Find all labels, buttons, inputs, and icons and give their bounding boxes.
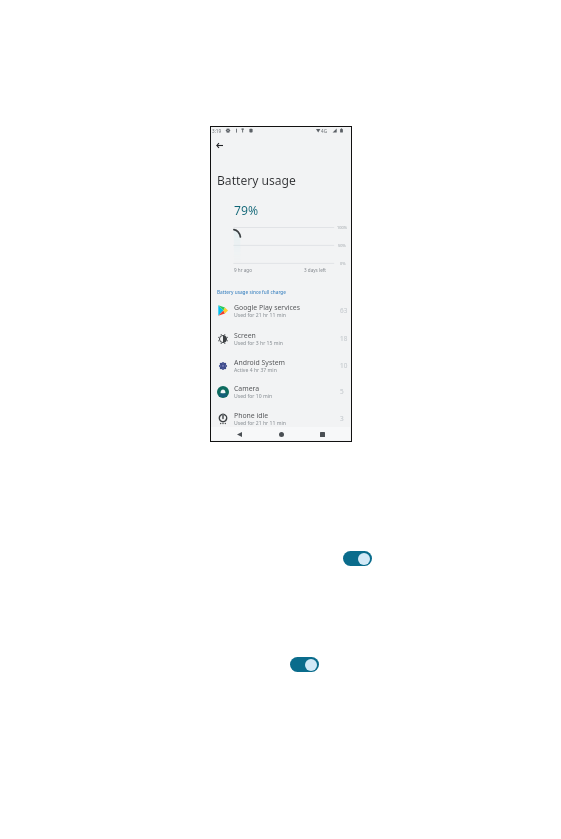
staticText: 3 days left: [304, 267, 326, 273]
button[interactable]: Camera: [211, 378, 350, 405]
staticText: Screen: [234, 331, 256, 340]
staticText: Google Play services: [234, 303, 300, 312]
staticText: 18: [340, 334, 348, 343]
button[interactable]: Toggle switch, on: [290, 657, 319, 672]
button[interactable]: Back: [233, 428, 245, 440]
staticText: Camera: [234, 384, 260, 393]
staticText: Used for 21 hr 11 min: [234, 312, 286, 319]
staticText: 3: [340, 414, 344, 423]
staticText: 79%: [234, 202, 259, 219]
staticText: 3:19: [212, 128, 222, 134]
staticText: Active 4 hr 37 min: [234, 367, 277, 374]
staticText: Used for 10 min: [234, 393, 273, 400]
staticText: Battery usage since full charge: [217, 289, 286, 295]
staticText: 4G: [321, 128, 327, 134]
button[interactable]: Phone idle: [211, 405, 350, 432]
button[interactable]: Home: [275, 428, 287, 440]
staticText: 10: [340, 361, 348, 370]
staticText: Phone idle: [234, 411, 269, 420]
staticText: 9 hr ago: [234, 267, 252, 273]
staticText: Used for 3 hr 15 min: [234, 340, 283, 347]
button[interactable]: Google Play services: [211, 297, 350, 324]
staticText: 0%: [340, 261, 346, 266]
button[interactable]: Back: [213, 139, 225, 151]
button[interactable]: Toggle switch, on: [343, 551, 372, 566]
staticText: 5: [340, 387, 344, 396]
staticText: 63: [340, 306, 348, 315]
staticText: Android System: [234, 358, 285, 367]
staticText: Used for 21 hr 11 min: [234, 420, 286, 427]
button[interactable]: Recent apps: [316, 428, 328, 440]
staticText: Battery usage: [217, 172, 296, 188]
button[interactable]: Android System: [211, 352, 350, 379]
staticText: 50%: [338, 243, 346, 248]
button[interactable]: Screen: [211, 325, 350, 352]
staticText: 100%: [337, 225, 347, 230]
